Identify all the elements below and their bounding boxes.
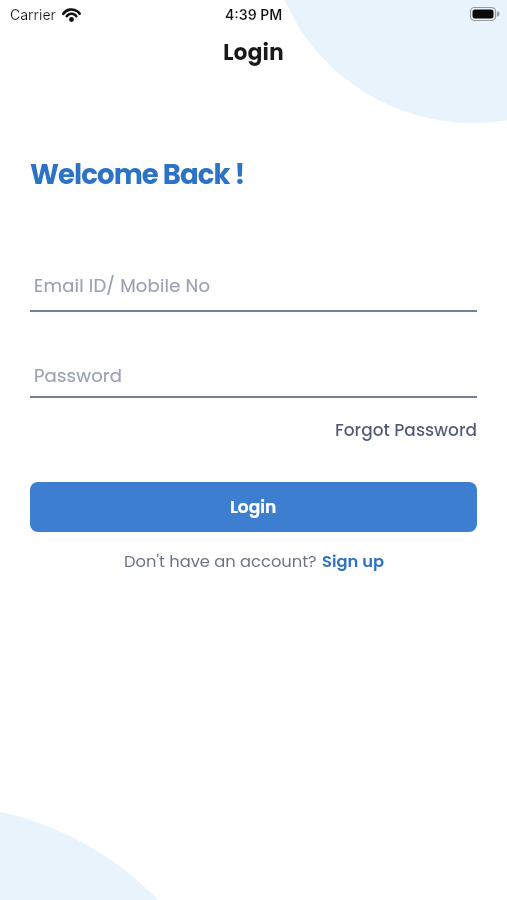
button[interactable]: Password xyxy=(30,363,477,398)
button[interactable]: Login xyxy=(30,482,477,532)
staticText: Email ID/ Mobile No xyxy=(34,273,211,298)
staticText: Login xyxy=(223,37,284,68)
staticText: Welcome Back ! xyxy=(30,155,245,193)
staticText: Don't have an account? xyxy=(124,550,322,573)
button[interactable]: Sign up xyxy=(322,550,384,573)
button[interactable]: Forgot Password xyxy=(335,418,477,442)
staticText: Carrier xyxy=(10,6,56,23)
staticText: Login xyxy=(230,495,277,519)
staticText: Password xyxy=(34,363,123,388)
staticText: 4:39 PM xyxy=(225,6,283,23)
button[interactable]: Email ID/ Mobile No xyxy=(30,273,477,312)
